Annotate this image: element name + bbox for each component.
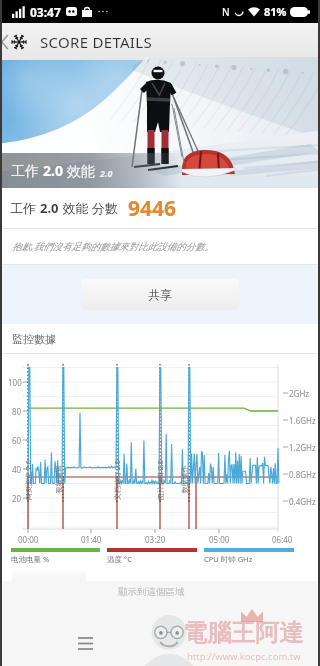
staticText: 2GHz <box>289 388 310 399</box>
staticText: 网页浏览 2.0 <box>24 460 34 500</box>
button[interactable]: 共享 <box>81 279 239 310</box>
staticText: 0.8GHz <box>289 469 316 480</box>
staticText: 电池电量 % <box>11 554 50 564</box>
staticText: 数据操作 <box>179 465 188 493</box>
staticText: 图片编辑 2.0 <box>156 460 166 500</box>
staticText: 工作 <box>11 161 43 180</box>
staticText: 2.0 <box>100 167 113 179</box>
staticText: 抱歉,我們沒有足夠的數據來對比此設備的分數。 <box>12 240 214 253</box>
staticText: 共享 <box>148 287 172 302</box>
staticText: 顯示到這個區域 <box>118 586 185 598</box>
staticText: 60 <box>12 435 22 446</box>
staticText: 效能 分數 <box>59 199 118 217</box>
staticText: http://www.kocpc.com.tw <box>187 650 301 663</box>
staticText: 監控數據 <box>12 332 56 346</box>
staticText: SCORE DETAILS <box>40 32 152 52</box>
staticText: 05:00 <box>209 534 230 545</box>
staticText: 文档编写 2.0 <box>113 460 123 500</box>
staticText: 81% <box>264 4 287 19</box>
staticText: 2.0 <box>43 161 63 180</box>
staticText: 03:47 <box>30 4 61 20</box>
staticText: 00:00 <box>18 534 39 545</box>
staticText: 温度 °C <box>107 554 132 564</box>
staticText: 2.0 <box>40 199 59 217</box>
staticText: 9446 <box>128 194 177 223</box>
staticText: 06:40 <box>272 534 293 545</box>
button[interactable]: Menu <box>70 628 100 658</box>
staticText: 1.6GHz <box>289 415 316 426</box>
staticText: 03:20 <box>145 534 166 545</box>
staticText: 1.2GHz <box>289 442 316 453</box>
staticText: 效能 <box>63 161 95 180</box>
button[interactable]: Back <box>0 23 28 60</box>
staticText: 01:40 <box>81 534 102 545</box>
staticText: 80 <box>12 406 22 417</box>
staticText: 0.4GHz <box>289 496 316 507</box>
staticText: 電腦王阿達 <box>183 618 303 648</box>
staticText: 20 <box>12 493 22 504</box>
staticText: 工作 <box>10 199 40 217</box>
staticText: 视频编辑 <box>53 465 62 493</box>
staticText: 100 <box>8 377 22 388</box>
staticText: 40 <box>12 464 22 475</box>
staticText: CPU 时钟 GHz <box>204 554 253 564</box>
staticText: N <box>222 5 230 19</box>
